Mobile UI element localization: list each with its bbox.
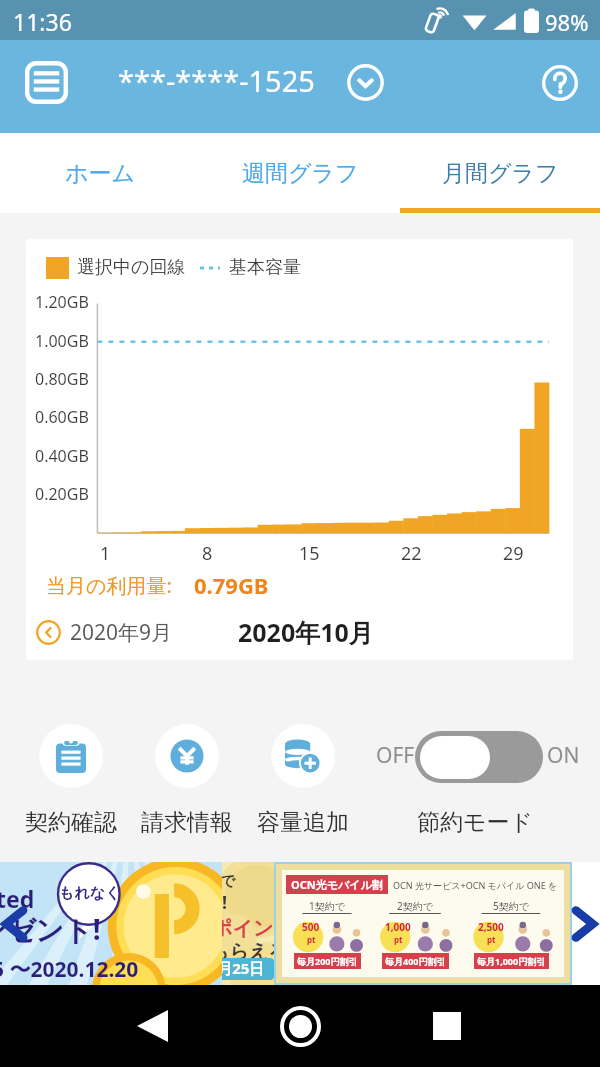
staticText: ンゼント! (0, 910, 101, 948)
button[interactable]: 契約確認 (11, 724, 131, 837)
staticText: 基本容量 (229, 256, 301, 279)
staticText: 毎月1,000円割引 (477, 955, 546, 967)
staticText: ted (0, 883, 35, 914)
button[interactable]: OFF (373, 726, 580, 784)
staticText: pt (307, 934, 316, 945)
staticText: ホーム (65, 159, 136, 188)
staticText: 98% (545, 7, 589, 37)
staticText: 11:36 (13, 6, 72, 37)
staticText: 8 (202, 541, 213, 566)
staticText: 2契約で (397, 899, 433, 913)
staticText: ***-****-1525 (118, 61, 315, 100)
staticText: 当月の利用量: (46, 572, 172, 599)
staticText: 請求情報 (141, 808, 233, 837)
staticText: 2020年9月 (70, 618, 173, 647)
button[interactable]: Previous month (33, 617, 63, 647)
staticText: ポイント (222, 916, 294, 941)
staticText: pt (394, 934, 403, 945)
button[interactable]: Menu (13, 49, 80, 116)
button[interactable]: 請求情報 (127, 724, 247, 837)
staticText: 0.40GB (35, 445, 89, 467)
button[interactable]: Back (124, 998, 180, 1054)
staticText: 0.80GB (35, 368, 89, 390)
staticText: 0.79GB (194, 570, 269, 600)
staticText: もらえる! (222, 938, 294, 964)
staticText: OCN光モバイル割 (291, 877, 383, 892)
button[interactable]: Next ad (562, 902, 600, 946)
staticText: 1 (100, 541, 111, 566)
staticText: OFF (376, 741, 415, 770)
staticText: 契約確認 (25, 808, 117, 837)
staticText: 毎月400円割引 (385, 955, 446, 967)
staticText: 5契約で (493, 899, 529, 913)
staticText: で (222, 872, 236, 891)
button[interactable]: もれなく (0, 862, 222, 985)
staticText: 容量追加 (257, 808, 349, 837)
button[interactable]: Select line (344, 61, 386, 103)
button[interactable]: ホーム (0, 133, 200, 208)
button[interactable]: Previous ad (0, 902, 37, 946)
staticText: 12月25日(金) (222, 958, 273, 980)
staticText: 選択中の回線 (77, 256, 186, 279)
staticText: 節約モード (417, 808, 534, 837)
staticText: OCN 光サービス+OCN モバイル ONE を (393, 879, 558, 891)
staticText: 1.20GB (35, 291, 89, 313)
staticText: もれなく (59, 884, 121, 903)
staticText: 15 (299, 541, 320, 566)
staticText: pt (487, 934, 496, 945)
staticText: 2020年10月 (238, 615, 374, 649)
staticText: ON (547, 741, 580, 770)
staticText: 22 (401, 541, 422, 566)
staticText: 29 (503, 541, 524, 566)
staticText: 5 〜2020.12.20 (0, 955, 139, 984)
button[interactable]: 週間グラフ (200, 133, 400, 208)
button[interactable]: Recents (419, 998, 475, 1054)
staticText: 500 (302, 920, 320, 934)
staticText: 2,500 (478, 920, 504, 934)
staticText: ! (222, 890, 228, 915)
button[interactable]: Help (537, 60, 582, 105)
staticText: 1,000 (385, 920, 411, 934)
button[interactable]: 月間グラフ (400, 133, 600, 208)
button[interactable]: で (222, 862, 572, 985)
staticText: 1契約で (309, 899, 345, 913)
staticText: 1.00GB (35, 330, 89, 352)
staticText: 毎月200円割引 (297, 955, 358, 967)
button[interactable]: Home (272, 998, 328, 1054)
button[interactable]: 容量追加 (243, 724, 363, 837)
staticText: 0.20GB (35, 483, 89, 505)
staticText: 0.60GB (35, 406, 89, 428)
staticText: 週間グラフ (242, 159, 359, 188)
staticText: 月間グラフ (442, 159, 559, 188)
